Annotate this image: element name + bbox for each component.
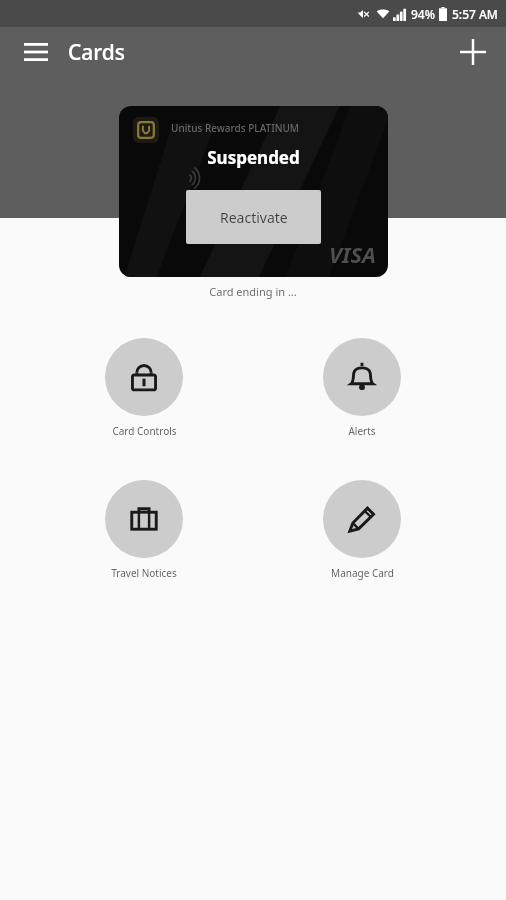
button[interactable]: Add card: [450, 29, 496, 75]
button[interactable]: Alerts: [323, 338, 401, 438]
button[interactable]: Unitus Rewards PLATINUM: [119, 106, 388, 277]
button[interactable]: Travel Notices: [105, 480, 183, 580]
staticText: Card ending in ...: [209, 284, 297, 299]
staticText: Alerts: [348, 424, 376, 438]
staticText: Travel Notices: [111, 566, 177, 580]
staticText: Unitus Rewards PLATINUM: [171, 121, 300, 135]
button[interactable]: Manage Card: [323, 480, 401, 580]
staticText: 94%: [411, 6, 435, 22]
staticText: Reactivate: [220, 208, 288, 227]
staticText: Cards: [68, 38, 126, 67]
staticText: Manage Card: [331, 566, 394, 580]
staticText: Suspended: [119, 146, 388, 169]
button[interactable]: Open navigation menu: [14, 30, 58, 74]
button[interactable]: Reactivate: [186, 190, 321, 244]
staticText: VISA: [329, 239, 376, 269]
button[interactable]: Card Controls: [105, 338, 183, 438]
staticText: Card Controls: [112, 424, 177, 438]
staticText: 5:57 AM: [452, 6, 498, 22]
